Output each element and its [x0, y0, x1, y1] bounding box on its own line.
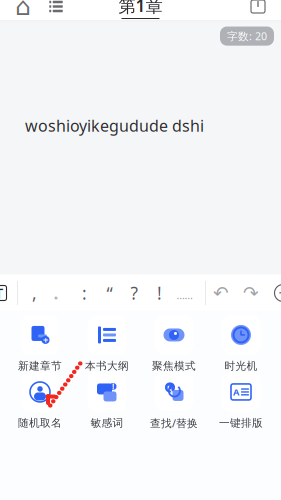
staticText: 一键排版	[219, 416, 263, 429]
staticText: 本书大纲	[85, 359, 129, 372]
staticText: ↷	[243, 282, 259, 304]
staticText: 时光机	[224, 359, 257, 372]
button[interactable]: 时光机	[207, 315, 274, 372]
staticText: 聚焦模式	[152, 359, 196, 372]
button[interactable]: Q	[140, 372, 207, 429]
button[interactable]: A	[207, 372, 274, 429]
staticText: ↻	[165, 379, 183, 403]
staticText: A	[233, 386, 239, 398]
staticText: 。	[53, 287, 65, 301]
staticText: :	[82, 281, 87, 304]
button[interactable]: Text style	[0, 274, 17, 311]
button[interactable]: Undo	[206, 274, 236, 311]
button[interactable]: More tools	[266, 274, 281, 311]
staticText: woshioyikegudude dshi	[25, 115, 204, 136]
staticText: ↶	[213, 282, 229, 304]
staticText: +	[43, 334, 48, 346]
staticText: !	[112, 381, 114, 392]
button[interactable]: !	[147, 274, 172, 311]
staticText: 随机取名	[18, 416, 62, 429]
staticText: ,	[32, 281, 37, 304]
button[interactable]: 。	[47, 274, 72, 311]
button[interactable]: ……	[172, 274, 197, 311]
button[interactable]: Chapter list	[40, 0, 72, 20]
staticText: +	[278, 282, 281, 304]
button[interactable]: 本书大纲	[73, 315, 140, 372]
button[interactable]: +	[6, 315, 73, 372]
button[interactable]: ,	[22, 274, 47, 311]
button[interactable]: :	[72, 274, 97, 311]
staticText: ……	[176, 288, 192, 302]
staticText: ?	[130, 281, 138, 304]
staticText: 第1章	[118, 0, 162, 17]
staticText: T	[0, 283, 3, 303]
staticText: 查找/替换	[150, 416, 198, 430]
button[interactable]: ?	[122, 274, 147, 311]
button[interactable]: Home	[6, 0, 40, 20]
button[interactable]: 聚焦模式	[140, 315, 207, 372]
button[interactable]: 随机取名	[6, 372, 73, 429]
button[interactable]: !	[73, 372, 140, 429]
button[interactable]: “	[97, 274, 122, 311]
staticText: Q	[167, 382, 173, 393]
staticText: “	[106, 282, 112, 305]
staticText: !	[157, 281, 162, 304]
button[interactable]: Redo	[236, 274, 266, 311]
staticText: 字数: 20	[227, 29, 267, 43]
staticText: 新建章节	[18, 359, 62, 372]
staticText: ⌂	[15, 0, 31, 21]
button[interactable]: 第1章	[118, 0, 162, 19]
staticText: 敏感词	[90, 416, 123, 429]
button[interactable]: Reading view	[241, 0, 275, 20]
button[interactable]: 字数: 20	[220, 26, 274, 46]
